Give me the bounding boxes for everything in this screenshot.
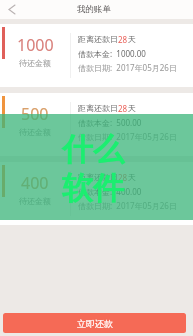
button[interactable]: 立即还款 <box>3 313 186 333</box>
staticText: 借款日期: 2017年05月26日 <box>78 131 177 142</box>
staticText: 借款本金: 400.00 <box>78 186 142 197</box>
staticText: 400 <box>21 172 49 194</box>
staticText: 我的账单 <box>77 4 111 15</box>
staticText: 距离还款日 <box>78 172 118 182</box>
staticText: 28 <box>118 172 128 183</box>
staticText: 500 <box>21 103 49 125</box>
staticText: 借款本金: 1000.00 <box>78 48 146 59</box>
staticText: 天 <box>128 34 136 44</box>
staticText: 距离还款日 <box>78 103 118 113</box>
staticText: 待还金额 <box>19 196 51 206</box>
staticText: 借款日期: 2017年05月26日 <box>78 200 177 211</box>
staticText: 立即还款 <box>77 318 113 329</box>
staticText: 什么 <box>62 130 124 169</box>
staticText: 待还金额 <box>19 58 51 68</box>
staticText: 1000 <box>17 34 54 56</box>
staticText: 天 <box>128 172 136 182</box>
button[interactable]: 1000 <box>0 24 193 87</box>
button[interactable]: 400 <box>0 162 193 225</box>
button[interactable]: 500 <box>0 93 193 156</box>
staticText: 软件 <box>62 169 124 208</box>
button[interactable]: Back <box>0 0 24 19</box>
staticText: 28 <box>118 34 128 45</box>
staticText: 28 <box>118 103 128 114</box>
staticText: 待还金额 <box>19 127 51 137</box>
staticText: 距离还款日 <box>78 34 118 44</box>
staticText: 天 <box>128 103 136 113</box>
staticText: 借款日期: 2017年05月26日 <box>78 62 177 73</box>
staticText: 借款本金: 500.00 <box>78 117 142 128</box>
